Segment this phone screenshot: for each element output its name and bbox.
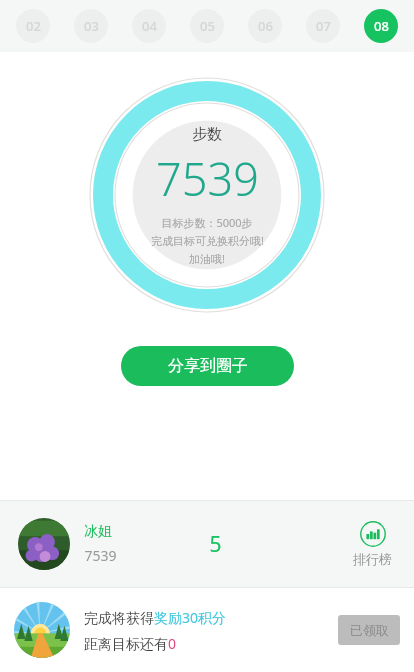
button[interactable]: 03 (74, 9, 108, 43)
staticText: 排行榜 (353, 551, 392, 567)
button[interactable]: 02 (16, 9, 50, 43)
button[interactable]: 排行榜 (349, 519, 396, 569)
staticText: 已领取 (350, 622, 389, 638)
staticText: 02 (26, 17, 41, 35)
staticText: 完成目标可兑换积分哦! (151, 233, 264, 248)
staticText: 步数 (192, 125, 222, 144)
staticText: 加油哦! (189, 251, 225, 266)
staticText: 距离目标还有0 (84, 634, 177, 653)
staticText: 07 (316, 17, 331, 35)
button[interactable]: 07 (306, 9, 340, 43)
button[interactable]: 分享到圈子 (121, 346, 294, 386)
button[interactable]: 06 (248, 9, 282, 43)
staticText: 04 (142, 17, 157, 35)
staticText: 目标步数：5000步 (161, 215, 253, 230)
staticText: 完成将获得奖励30积分 (84, 608, 227, 627)
staticText: 冰姐 (84, 523, 112, 541)
button[interactable]: 05 (190, 9, 224, 43)
button[interactable]: 冰姐 (0, 501, 414, 587)
staticText: 7539 (156, 148, 259, 209)
staticText: 7539 (84, 546, 117, 565)
staticText: 03 (84, 17, 99, 35)
button[interactable]: 完成将获得奖励30积分 (0, 588, 414, 672)
button[interactable]: 已领取 (338, 615, 400, 645)
staticText: 5 (209, 530, 222, 559)
staticText: 08 (374, 17, 389, 35)
staticText: 06 (258, 17, 273, 35)
button[interactable]: 04 (132, 9, 166, 43)
staticText: 分享到圈子 (168, 356, 248, 376)
staticText: 05 (200, 17, 215, 35)
button[interactable]: 08 (364, 9, 398, 43)
